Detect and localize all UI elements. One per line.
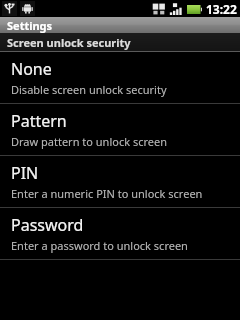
staticText: Draw pattern to unlock screen — [11, 134, 167, 149]
staticText: PIN — [11, 162, 39, 184]
staticText: Pattern — [11, 110, 67, 132]
staticText: Disable screen unlock security — [11, 82, 167, 97]
staticText: None — [11, 58, 52, 80]
button[interactable]: Password — [0, 208, 240, 259]
staticText: Settings — [7, 18, 53, 33]
button[interactable]: None — [0, 52, 240, 103]
staticText: 13:22 — [206, 1, 237, 17]
staticText: Enter a numeric PIN to unlock screen — [11, 186, 203, 201]
button[interactable]: Pattern — [0, 104, 240, 155]
other: Android system — [20, 1, 35, 16]
staticText: Password — [11, 214, 84, 236]
other: USB connected — [2, 1, 17, 16]
staticText: Enter a password to unlock screen — [11, 238, 188, 253]
staticText: Screen unlock security — [7, 35, 131, 50]
button[interactable]: PIN — [0, 156, 240, 207]
